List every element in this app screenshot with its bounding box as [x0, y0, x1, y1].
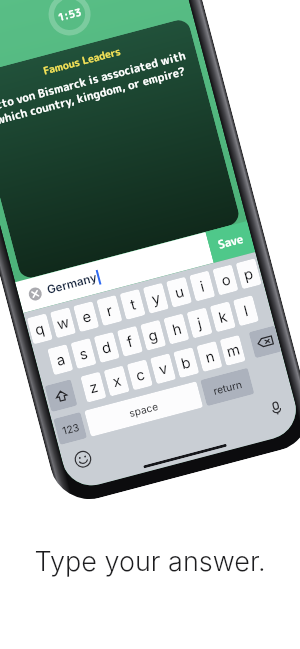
staticText: g — [146, 326, 160, 346]
staticText: r — [104, 302, 115, 320]
other: Clear text — [27, 286, 43, 302]
button[interactable]: h — [163, 313, 189, 345]
button[interactable]: f — [117, 326, 143, 357]
staticText: space — [128, 400, 160, 419]
button[interactable]: r — [96, 295, 122, 326]
staticText: j — [195, 314, 204, 333]
button[interactable]: v — [150, 353, 176, 384]
staticText: c — [134, 365, 147, 385]
button[interactable]: c — [127, 359, 153, 390]
staticText: p — [242, 264, 256, 284]
button[interactable]: b — [173, 347, 199, 378]
staticText: Type your answer. — [0, 545, 300, 578]
other: Backspace — [255, 331, 275, 352]
button[interactable]: Backspace — [249, 325, 282, 358]
button[interactable]: Dictate — [262, 394, 289, 421]
button[interactable]: Emoji keyboard — [69, 445, 96, 472]
button[interactable]: t — [119, 289, 146, 320]
button[interactable]: Save — [205, 221, 255, 263]
button[interactable]: n — [196, 341, 223, 372]
staticText: 1:53 — [56, 4, 84, 24]
staticText: q — [33, 319, 47, 339]
staticText: b — [179, 353, 194, 373]
button[interactable]: p — [235, 258, 262, 289]
staticText: m — [225, 340, 242, 361]
staticText: t — [128, 295, 138, 314]
button[interactable]: d — [94, 332, 120, 363]
button[interactable]: w — [50, 307, 76, 338]
button[interactable]: a — [47, 344, 73, 375]
staticText: e — [80, 307, 93, 327]
staticText: Famous Leaders — [41, 44, 122, 78]
staticText: y — [150, 289, 163, 308]
staticText: Otto von Bismarck is associated with whi… — [0, 47, 194, 130]
button[interactable]: 123 — [53, 412, 87, 445]
staticText: o — [219, 270, 233, 290]
button[interactable]: y — [143, 283, 169, 314]
button[interactable]: k — [210, 301, 236, 332]
button[interactable]: g — [140, 320, 166, 351]
button[interactable]: e — [73, 301, 99, 332]
button[interactable]: o — [212, 264, 238, 295]
button[interactable]: Shift — [45, 379, 78, 412]
staticText: x — [111, 371, 124, 391]
other: Shift — [53, 387, 70, 405]
staticText: u — [173, 283, 186, 302]
button[interactable]: return — [200, 368, 254, 406]
staticText: d — [100, 338, 114, 358]
staticText: s — [77, 344, 90, 364]
button[interactable]: x — [103, 365, 130, 397]
staticText: l — [242, 302, 250, 320]
staticText: w — [55, 313, 72, 333]
button[interactable]: q — [27, 313, 53, 344]
staticText: f — [125, 332, 135, 351]
staticText: v — [157, 359, 170, 379]
staticText: z — [87, 378, 101, 397]
button[interactable]: l — [233, 295, 259, 326]
staticText: i — [198, 277, 207, 296]
staticText: n — [203, 347, 217, 367]
button[interactable]: i — [189, 270, 215, 302]
button[interactable]: u — [166, 277, 192, 308]
button[interactable]: space — [84, 381, 203, 437]
staticText: Save — [216, 231, 245, 253]
staticText: Germany — [45, 270, 98, 297]
button[interactable]: m — [220, 335, 246, 366]
button[interactable]: s — [70, 338, 97, 369]
staticText: return — [212, 378, 244, 397]
staticText: 123 — [61, 421, 81, 437]
staticText: k — [217, 307, 230, 327]
button[interactable]: j — [186, 307, 213, 338]
staticText: a — [54, 350, 68, 370]
staticText: h — [170, 320, 184, 339]
button[interactable]: z — [80, 371, 106, 403]
